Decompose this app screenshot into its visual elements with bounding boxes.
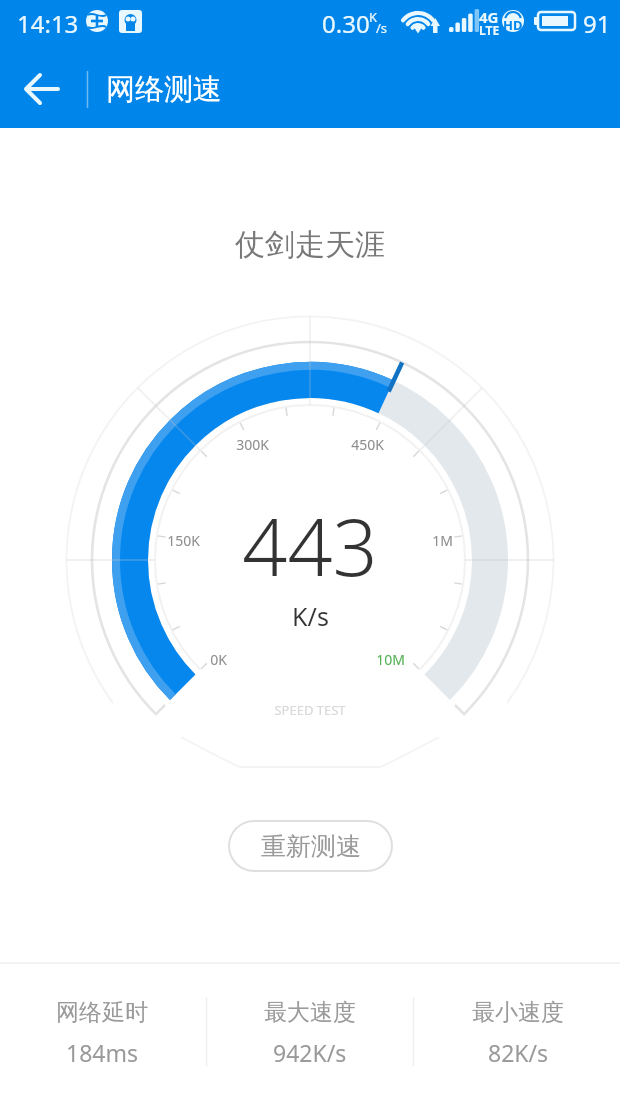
staticText: 450K <box>351 435 384 454</box>
staticText: 942K/s <box>273 1037 347 1068</box>
staticText: 4G <box>479 7 499 27</box>
staticText: 1M <box>432 531 453 550</box>
staticText: LTE <box>479 22 500 38</box>
staticText: 184ms <box>66 1037 138 1068</box>
staticText: 网络延时 <box>56 998 148 1027</box>
button[interactable]: 重新测速 <box>230 822 391 870</box>
staticText: 网络测速 <box>106 71 222 108</box>
staticText: SPEED TEST <box>274 701 346 719</box>
staticText: 91 <box>583 7 611 40</box>
staticText: 10M <box>376 650 405 669</box>
staticText: 443 <box>242 492 378 600</box>
button[interactable]: Back <box>10 57 74 121</box>
staticText: 14:13 <box>17 7 79 40</box>
staticText: 82K/s <box>488 1037 549 1068</box>
staticText: HD <box>503 16 523 34</box>
staticText: 仗剑走天涯 <box>235 226 385 264</box>
staticText: 0.30 <box>322 7 370 40</box>
staticText: 300K <box>236 435 269 454</box>
staticText: 最小速度 <box>472 998 564 1027</box>
staticText: K/s <box>292 599 329 633</box>
staticText: /s <box>376 19 388 37</box>
staticText: 150K <box>167 531 200 550</box>
staticText: 0K <box>210 650 227 669</box>
staticText: 最大速度 <box>264 998 356 1027</box>
staticText: K <box>369 8 378 26</box>
staticText: 重新测速 <box>261 831 361 862</box>
